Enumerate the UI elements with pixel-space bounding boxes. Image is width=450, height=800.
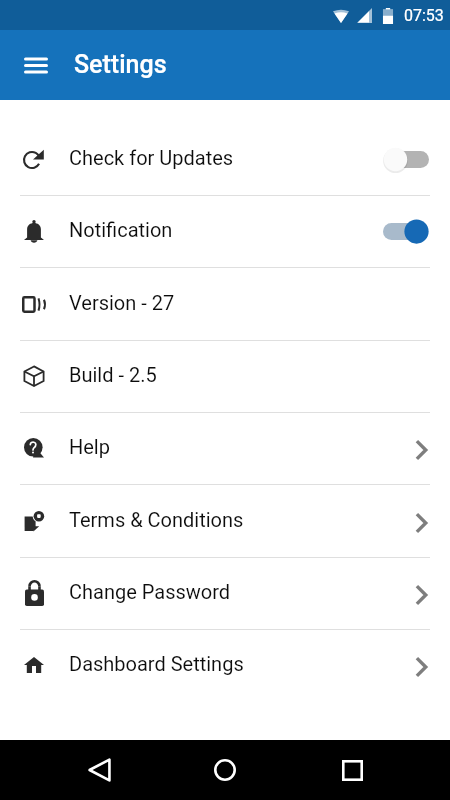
- button[interactable]: Terms & Conditions: [0, 485, 450, 557]
- staticText: Settings: [74, 50, 167, 79]
- button[interactable]: Check for Updates toggle, off: [383, 144, 429, 174]
- staticText: Version - 27: [69, 291, 175, 314]
- button[interactable]: Recent apps: [328, 746, 376, 794]
- button[interactable]: Check for Updates: [0, 123, 450, 195]
- button[interactable]: Back: [75, 746, 123, 794]
- staticText: Build - 2.5: [69, 363, 157, 386]
- button[interactable]: Change Password: [0, 557, 450, 629]
- staticText: Help: [69, 435, 110, 458]
- staticText: Change Password: [69, 580, 231, 603]
- staticText: 07:53: [404, 6, 444, 25]
- button[interactable]: Version - 27: [0, 268, 450, 340]
- button[interactable]: Notification toggle, on: [383, 216, 429, 246]
- staticText: Notification: [69, 218, 173, 241]
- staticText: Dashboard Settings: [69, 652, 244, 675]
- button[interactable]: Notification: [0, 195, 450, 267]
- button[interactable]: Help: [0, 412, 450, 484]
- button[interactable]: Dashboard Settings: [0, 629, 450, 701]
- button[interactable]: Home: [201, 746, 249, 794]
- button[interactable]: Build - 2.5: [0, 340, 450, 412]
- staticText: Check for Updates: [69, 146, 234, 169]
- staticText: Terms & Conditions: [69, 508, 244, 531]
- button[interactable]: Open navigation menu: [12, 41, 60, 89]
